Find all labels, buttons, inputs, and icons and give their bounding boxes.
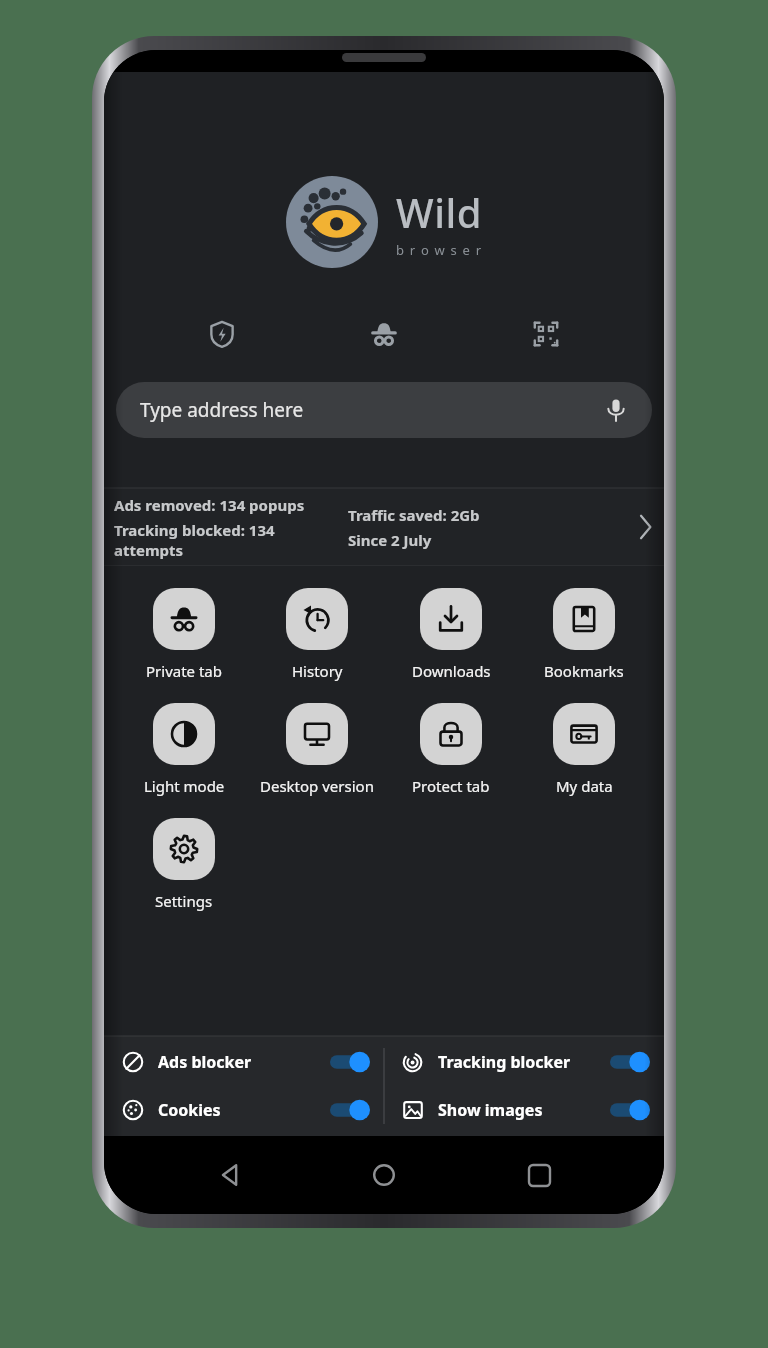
button[interactable]: Ads removed: 134 popups [104, 488, 664, 566]
staticText: Ads blocker [158, 1051, 252, 1073]
staticText: Cookies [158, 1099, 221, 1121]
staticText: My data [556, 776, 613, 796]
button[interactable]: Secure browsing [200, 312, 244, 356]
button[interactable]: Settings [126, 818, 242, 911]
button[interactable]: Light mode [126, 703, 242, 796]
staticText: Type address here [140, 397, 304, 423]
staticText: Light mode [144, 776, 225, 796]
staticText: Settings [155, 891, 213, 911]
button[interactable]: Tracking blocker [384, 1045, 664, 1079]
button[interactable]: Back [201, 1146, 259, 1204]
staticText: Ads removed: 134 popups [114, 495, 305, 515]
button[interactable]: My data [526, 703, 642, 796]
staticText: Private tab [146, 661, 223, 681]
staticText: Wild [396, 185, 483, 239]
button[interactable]: Bookmarks [526, 588, 642, 681]
staticText: b r o w s e r [396, 241, 483, 259]
staticText: Show images [438, 1099, 543, 1121]
staticText: Traffic saved: 2Gb [348, 505, 480, 525]
staticText: History [292, 661, 343, 681]
button[interactable]: Protect tab [393, 703, 509, 796]
other: Voice search [604, 398, 628, 422]
button[interactable]: Cookies [104, 1093, 384, 1127]
staticText: Downloads [412, 661, 491, 681]
button[interactable]: Show images [384, 1093, 664, 1127]
button[interactable]: Incognito mode [362, 312, 406, 356]
staticText: Tracking blocked: 134 attempts [114, 520, 326, 560]
button[interactable]: Scan QR code [524, 312, 568, 356]
button[interactable]: Downloads [393, 588, 509, 681]
button[interactable]: Recent apps [510, 1146, 568, 1204]
button[interactable]: Home [355, 1146, 413, 1204]
button[interactable]: Desktop version [259, 703, 375, 796]
button[interactable]: Type address here [116, 382, 652, 438]
button[interactable]: History [259, 588, 375, 681]
button[interactable]: Ads blocker [104, 1045, 384, 1079]
staticText: Desktop version [260, 776, 374, 796]
staticText: Protect tab [412, 776, 490, 796]
button[interactable]: Private tab [126, 588, 242, 681]
staticText: Since 2 July [348, 530, 432, 550]
staticText: Tracking blocker [438, 1051, 571, 1073]
staticText: Bookmarks [544, 661, 624, 681]
